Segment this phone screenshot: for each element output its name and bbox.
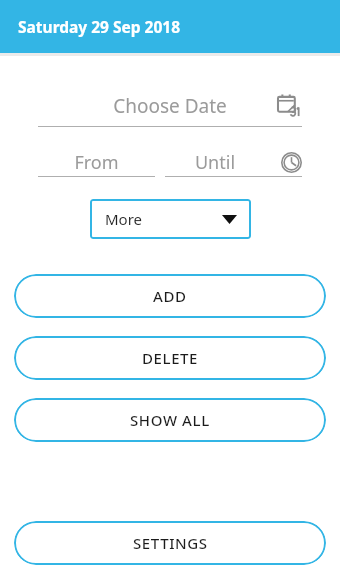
staticText: DELETE <box>142 348 199 368</box>
button[interactable]: More <box>90 199 251 239</box>
button[interactable]: SETTINGS <box>14 521 326 565</box>
button[interactable]: SHOW ALL <box>14 398 326 442</box>
button[interactable]: From <box>38 148 155 176</box>
staticText: Choose Date <box>0 93 340 119</box>
button[interactable]: Pick date <box>278 94 302 118</box>
button[interactable]: DELETE <box>14 336 326 380</box>
button[interactable]: ADD <box>14 274 326 318</box>
staticText: Saturday 29 Sep 2018 <box>18 16 181 37</box>
staticText: More <box>105 209 143 229</box>
staticText: Until <box>165 150 265 175</box>
staticText: SETTINGS <box>133 533 208 553</box>
staticText: SHOW ALL <box>130 410 210 430</box>
staticText: From <box>38 150 155 175</box>
staticText: ADD <box>153 286 187 306</box>
button[interactable]: Choose Date <box>0 86 340 126</box>
button[interactable]: Pick time <box>281 152 302 173</box>
button[interactable]: Until <box>165 150 265 175</box>
